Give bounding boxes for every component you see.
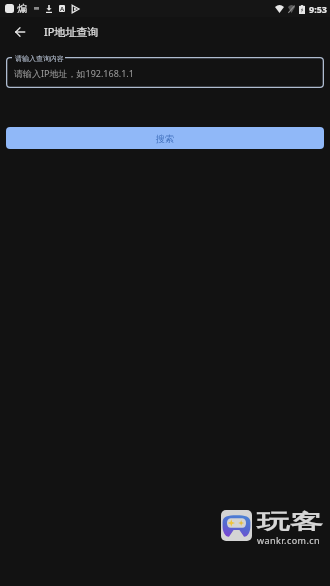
button[interactable]: 请输入查询内容 xyxy=(6,57,324,88)
staticText: wankr.com.cn xyxy=(257,534,321,546)
staticText: 玩客 xyxy=(257,509,323,535)
staticText: 9:53 xyxy=(309,3,327,15)
staticText: IP地址查询 xyxy=(44,24,99,39)
button[interactable]: Back xyxy=(6,18,34,46)
staticText: 煸 xyxy=(17,2,27,15)
staticText: 请输入IP地址，如192.168.1.1 xyxy=(14,67,134,79)
staticText: 请输入查询内容 xyxy=(15,54,64,63)
staticText: 搜索 xyxy=(156,133,174,144)
staticText: A xyxy=(60,5,65,12)
button[interactable]: 搜索 xyxy=(6,127,324,149)
